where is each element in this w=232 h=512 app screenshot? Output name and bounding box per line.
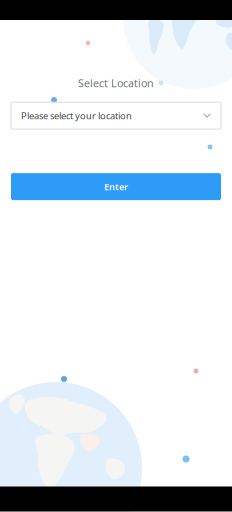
button[interactable]: Enter	[11, 173, 221, 200]
staticText: Select Location	[78, 76, 154, 90]
staticText: Enter	[104, 180, 128, 193]
button[interactable]: Please select your location	[11, 102, 221, 129]
staticText: Please select your location	[21, 109, 132, 122]
